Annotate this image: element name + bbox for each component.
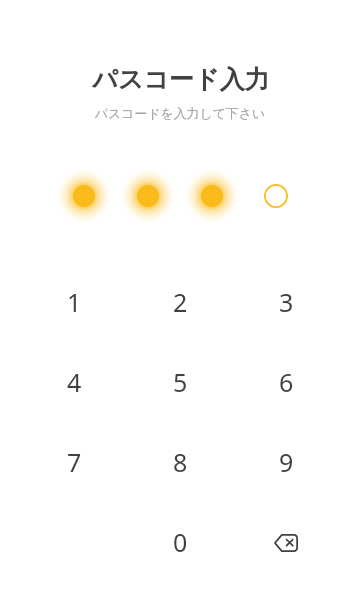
staticText: 7 xyxy=(67,445,82,479)
staticText: 9 xyxy=(279,445,294,479)
button[interactable]: 9 xyxy=(233,422,339,502)
button[interactable]: 1 xyxy=(21,262,127,342)
staticText: 8 xyxy=(173,445,188,479)
button[interactable]: 5 xyxy=(127,342,233,422)
staticText: 2 xyxy=(173,285,188,319)
staticText: 3 xyxy=(279,285,294,319)
staticText: パスコード入力 xyxy=(1,64,360,95)
button[interactable]: 7 xyxy=(21,422,127,502)
staticText: 6 xyxy=(279,365,294,399)
button[interactable]: 0 xyxy=(127,502,233,582)
button[interactable]: Backspace xyxy=(233,502,339,582)
button[interactable]: 4 xyxy=(21,342,127,422)
staticText: 1 xyxy=(67,285,82,319)
staticText: パスコードを入力して下さい xyxy=(0,106,360,122)
button[interactable]: 3 xyxy=(233,262,339,342)
staticText: 5 xyxy=(173,365,188,399)
button[interactable]: 6 xyxy=(233,342,339,422)
staticText: 4 xyxy=(67,365,82,399)
button[interactable]: 8 xyxy=(127,422,233,502)
staticText: 0 xyxy=(173,525,188,559)
button[interactable]: 2 xyxy=(127,262,233,342)
